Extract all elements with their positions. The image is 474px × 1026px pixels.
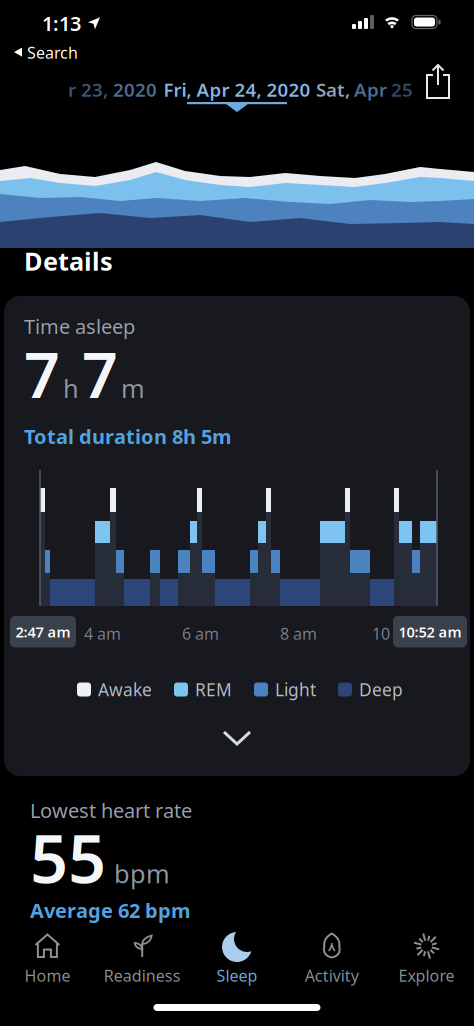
staticText: 8 am <box>280 623 317 644</box>
staticText: Details <box>24 244 113 278</box>
staticText: h <box>63 371 79 405</box>
staticText: 10:52 am <box>398 622 461 641</box>
staticText: 4 am <box>84 623 121 644</box>
button[interactable]: r 23, <box>68 77 157 102</box>
button[interactable] <box>423 63 453 100</box>
staticText: Lowest heart rate <box>30 797 192 824</box>
staticText: 2:47 am <box>15 622 70 641</box>
staticText: Search <box>27 42 78 63</box>
staticText: 6 am <box>182 623 219 644</box>
staticText: Sleep <box>216 965 257 986</box>
staticText: bpm <box>114 856 170 890</box>
staticText: r 23, <box>68 77 113 102</box>
button[interactable]: Readiness <box>95 930 190 986</box>
staticText: Total duration 8h 5m <box>24 423 232 450</box>
staticText: Light <box>275 678 316 701</box>
button[interactable]: Home <box>0 930 95 986</box>
button[interactable]: Sleep <box>190 930 284 986</box>
staticText: Awake <box>98 678 152 701</box>
staticText: Sat, <box>316 77 350 102</box>
button[interactable]: Search <box>14 42 78 63</box>
button[interactable]: Sat, <box>316 77 413 102</box>
staticText: 10 am <box>372 623 418 644</box>
button[interactable]: Fri, Apr 24, 2020 <box>163 77 310 102</box>
staticText: 7 <box>24 332 60 415</box>
staticText: REM <box>195 678 232 701</box>
staticText: 2020 <box>113 77 157 102</box>
staticText: Time asleep <box>24 313 135 340</box>
button[interactable]: Explore <box>379 930 474 986</box>
staticText: Activity <box>305 965 359 986</box>
staticText: m <box>121 371 145 405</box>
button[interactable]: Activity <box>284 930 379 986</box>
staticText: 1:13 <box>42 10 81 37</box>
staticText: 55 <box>30 813 106 901</box>
staticText: Average 62 bpm <box>30 897 191 924</box>
staticText: Fri, Apr 24, 2020 <box>163 77 310 102</box>
staticText: 25 <box>391 77 413 102</box>
staticText: Explore <box>399 965 455 986</box>
staticText: Home <box>24 965 70 986</box>
button[interactable] <box>222 730 252 746</box>
staticText: 7 <box>82 332 118 415</box>
staticText: Apr <box>354 77 387 102</box>
staticText: Deep <box>359 678 403 701</box>
staticText: Readiness <box>104 965 181 986</box>
